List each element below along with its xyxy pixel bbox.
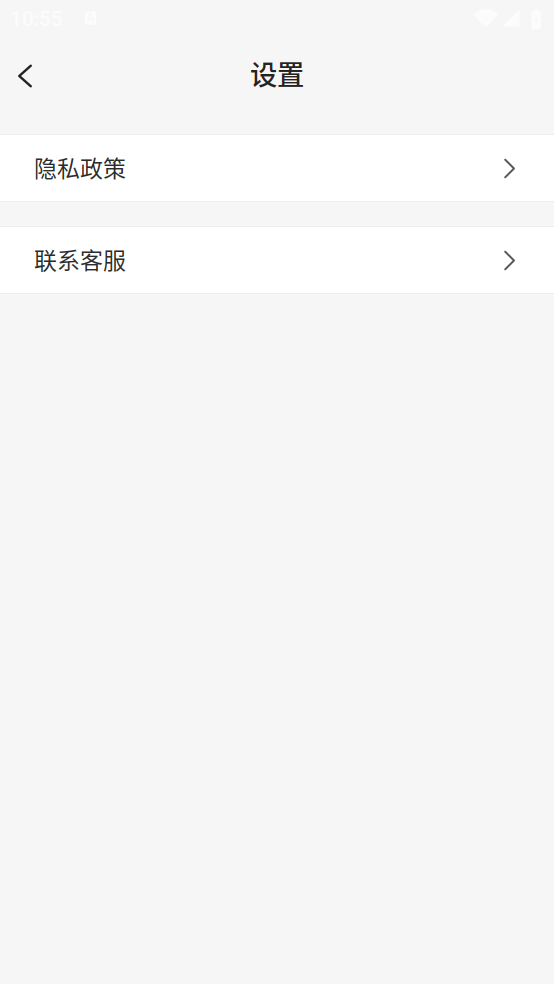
- button[interactable]: Back: [3, 54, 47, 98]
- button[interactable]: 联系客服: [0, 226, 554, 294]
- staticText: 隐私政策: [34, 150, 126, 184]
- button[interactable]: 隐私政策: [0, 134, 554, 202]
- staticText: 联系客服: [34, 242, 126, 276]
- staticText: 设置: [250, 53, 304, 93]
